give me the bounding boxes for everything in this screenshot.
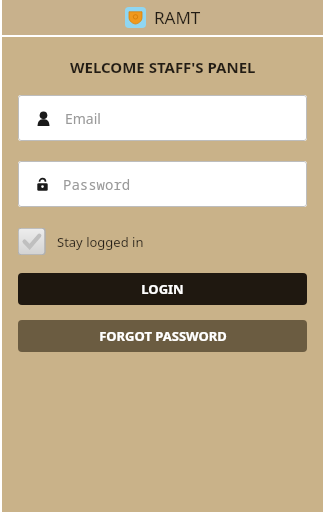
button[interactable]: FORGOT PASSWORD (18, 320, 307, 352)
staticText: WELCOME STAFF'S PANEL (70, 57, 256, 77)
staticText: Email (65, 109, 101, 128)
button[interactable]: Stay logged in (18, 228, 150, 255)
staticText: Password (63, 175, 131, 194)
button[interactable]: Email (18, 95, 307, 141)
staticText: RAMT (154, 6, 201, 29)
button[interactable]: Password (18, 161, 307, 207)
staticText: Stay logged in (57, 233, 144, 251)
staticText: LOGIN (141, 280, 184, 298)
button[interactable]: LOGIN (18, 273, 307, 305)
staticText: FORGOT PASSWORD (99, 327, 227, 345)
